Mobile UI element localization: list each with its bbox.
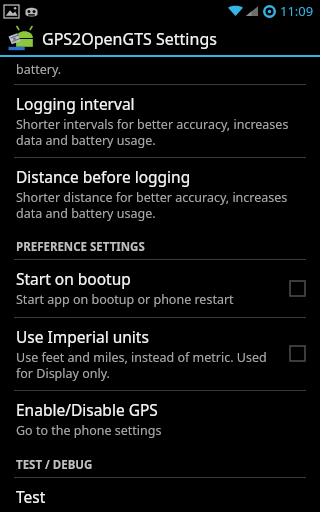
staticText: Start app on bootup or phone restart (16, 291, 234, 308)
staticText: PREFERENCE SETTINGS (16, 239, 145, 255)
staticText: TEST / DEBUG (16, 457, 93, 473)
button[interactable]: Unchecked (289, 280, 306, 297)
button[interactable]: Enable/Disable GPS (0, 391, 320, 448)
button[interactable]: Use Imperial units (0, 318, 320, 390)
staticText: Logging interval (16, 93, 135, 114)
staticText: GPS2OpenGTS Settings (42, 28, 217, 50)
staticText: Use Imperial units (16, 326, 149, 347)
staticText: Distance before logging (16, 166, 191, 187)
staticText: Go to the phone settings (16, 422, 162, 439)
staticText: battery. (16, 61, 62, 78)
staticText: Enable/Disable GPS (16, 399, 158, 420)
staticText: Shorter intervals for better accuracy, i… (16, 116, 306, 148)
staticText: Test (16, 486, 46, 503)
button[interactable]: Unchecked (289, 345, 306, 362)
staticText: 11:09 (280, 2, 314, 20)
button[interactable]: Test (0, 478, 320, 512)
button[interactable]: battery. (0, 57, 320, 84)
staticText: Shorter distance for better accuracy, in… (16, 189, 306, 221)
staticText: Start on bootup (16, 268, 131, 289)
button[interactable]: Start on bootup (0, 260, 320, 317)
button[interactable]: Distance before logging (0, 158, 320, 230)
staticText: Use feet and miles, instead of metric. U… (16, 349, 279, 381)
button[interactable]: Logging interval (0, 85, 320, 157)
